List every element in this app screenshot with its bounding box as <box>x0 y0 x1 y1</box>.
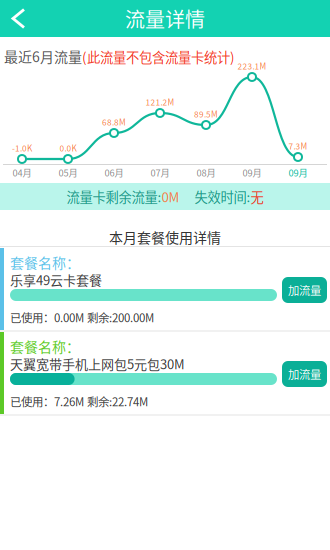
staticText: 无 <box>250 187 263 206</box>
staticText: 套餐名称： <box>10 336 80 356</box>
staticText: 07月 <box>150 166 169 179</box>
staticText: 天翼宽带手机上网包5元包30M <box>10 354 185 373</box>
staticText: 223.1M <box>237 60 266 72</box>
staticText: 06月 <box>104 166 123 179</box>
staticText: 04月 <box>12 166 31 179</box>
button[interactable]: 返回 <box>0 0 40 37</box>
staticText: 09月 <box>288 166 307 179</box>
staticText: -1.0K <box>12 142 32 154</box>
staticText: 89.5M <box>194 108 218 120</box>
staticText: (此流量不包含流量卡统计) <box>82 47 235 66</box>
staticText: 失效时间: <box>194 187 250 206</box>
staticText: 已使用：0.00M 剩余:200.00M <box>10 309 154 326</box>
button[interactable]: 加流量 <box>282 277 327 303</box>
staticText: 乐享49云卡套餐 <box>10 270 102 289</box>
staticText: 7.3M <box>288 140 307 152</box>
staticText: 121.2M <box>145 96 174 108</box>
staticText: 0M <box>161 187 179 206</box>
staticText: 08月 <box>196 166 215 179</box>
staticText: 加流量 <box>288 366 321 382</box>
staticText: 最近6月流量 <box>4 46 82 66</box>
staticText: 加流量 <box>288 282 321 298</box>
staticText: 09月 <box>242 166 261 179</box>
staticText: 已使用：7.26M 剩余:22.74M <box>10 393 148 410</box>
button[interactable]: 加流量 <box>282 361 327 387</box>
staticText: 68.8M <box>102 116 126 128</box>
staticText: 套餐名称： <box>10 252 80 272</box>
staticText: 本月套餐使用详情 <box>109 227 221 247</box>
staticText: 0.0K <box>59 142 76 154</box>
staticText: 流量详情 <box>125 4 205 33</box>
staticText: 05月 <box>58 166 77 179</box>
staticText: 流量卡剩余流量: <box>66 187 161 206</box>
